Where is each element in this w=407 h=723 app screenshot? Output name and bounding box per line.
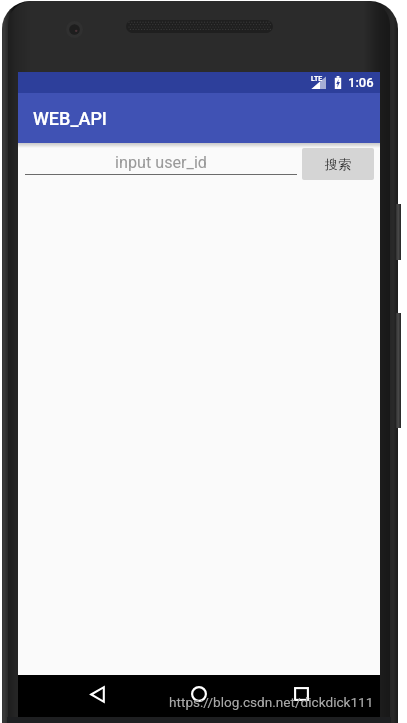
button[interactable]: Home: [182, 677, 216, 711]
button[interactable]: Back: [80, 677, 114, 711]
staticText: input user_id: [25, 153, 297, 172]
button[interactable]: input user_id: [25, 153, 297, 175]
staticText: 1:06: [348, 75, 374, 90]
button[interactable]: Recent apps: [284, 677, 318, 711]
staticText: 搜索: [325, 156, 351, 172]
staticText: WEB_API: [33, 108, 107, 129]
staticText: https://blog.csdn.net/dickdick111: [169, 694, 374, 710]
button[interactable]: 搜索: [302, 148, 374, 180]
staticText: LTE: [311, 75, 323, 83]
